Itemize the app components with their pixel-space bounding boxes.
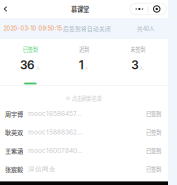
staticText: 人	[139, 65, 144, 71]
button[interactable]: 已签到	[3, 39, 57, 85]
staticText: mooc16586457…	[28, 110, 82, 118]
staticText: mooc15888362…	[28, 128, 83, 136]
staticText: 周宇博	[5, 109, 23, 118]
button[interactable]: 点击刷新名单	[0, 86, 168, 104]
staticText: 深信网金	[28, 165, 56, 173]
button[interactable]: Close	[148, 3, 165, 15]
staticText: 未签到	[130, 45, 145, 53]
button[interactable]: 王紫涵	[0, 141, 168, 160]
staticText: 1	[79, 58, 84, 72]
button[interactable]: 迟到	[57, 39, 111, 85]
staticText: 已签到	[146, 110, 161, 117]
button[interactable]: 耿英双	[0, 123, 168, 141]
button[interactable]: More	[131, 3, 148, 15]
staticText: 慕课堂	[71, 4, 89, 14]
staticText: 王紫涵	[5, 146, 23, 155]
staticText: 3	[131, 58, 138, 72]
staticText: mooc16007840…	[28, 147, 83, 154]
staticText: 已签到	[146, 128, 161, 136]
staticText: 耿英双	[5, 128, 23, 137]
staticText: 人	[36, 65, 41, 71]
staticText: 人	[84, 65, 89, 71]
staticText: 已签到	[146, 165, 161, 173]
button[interactable]: 未签到	[111, 39, 164, 85]
button[interactable]: Back	[0, 0, 10, 18]
staticText: 共40人	[137, 24, 155, 32]
staticText: 2020-03-10 09:50:15	[3, 25, 61, 32]
staticText: 36	[20, 58, 35, 72]
staticText: 张宸毅	[5, 165, 23, 173]
staticText: 迟到	[79, 45, 89, 53]
staticText: 后签到将自动关闭	[63, 24, 111, 32]
button[interactable]: 周宇博	[0, 104, 168, 123]
staticText: 已签到	[23, 45, 38, 53]
staticText: 已签到	[146, 147, 161, 154]
staticText: 点击刷新名单	[72, 94, 102, 102]
button[interactable]: 张宸毅	[0, 160, 168, 178]
